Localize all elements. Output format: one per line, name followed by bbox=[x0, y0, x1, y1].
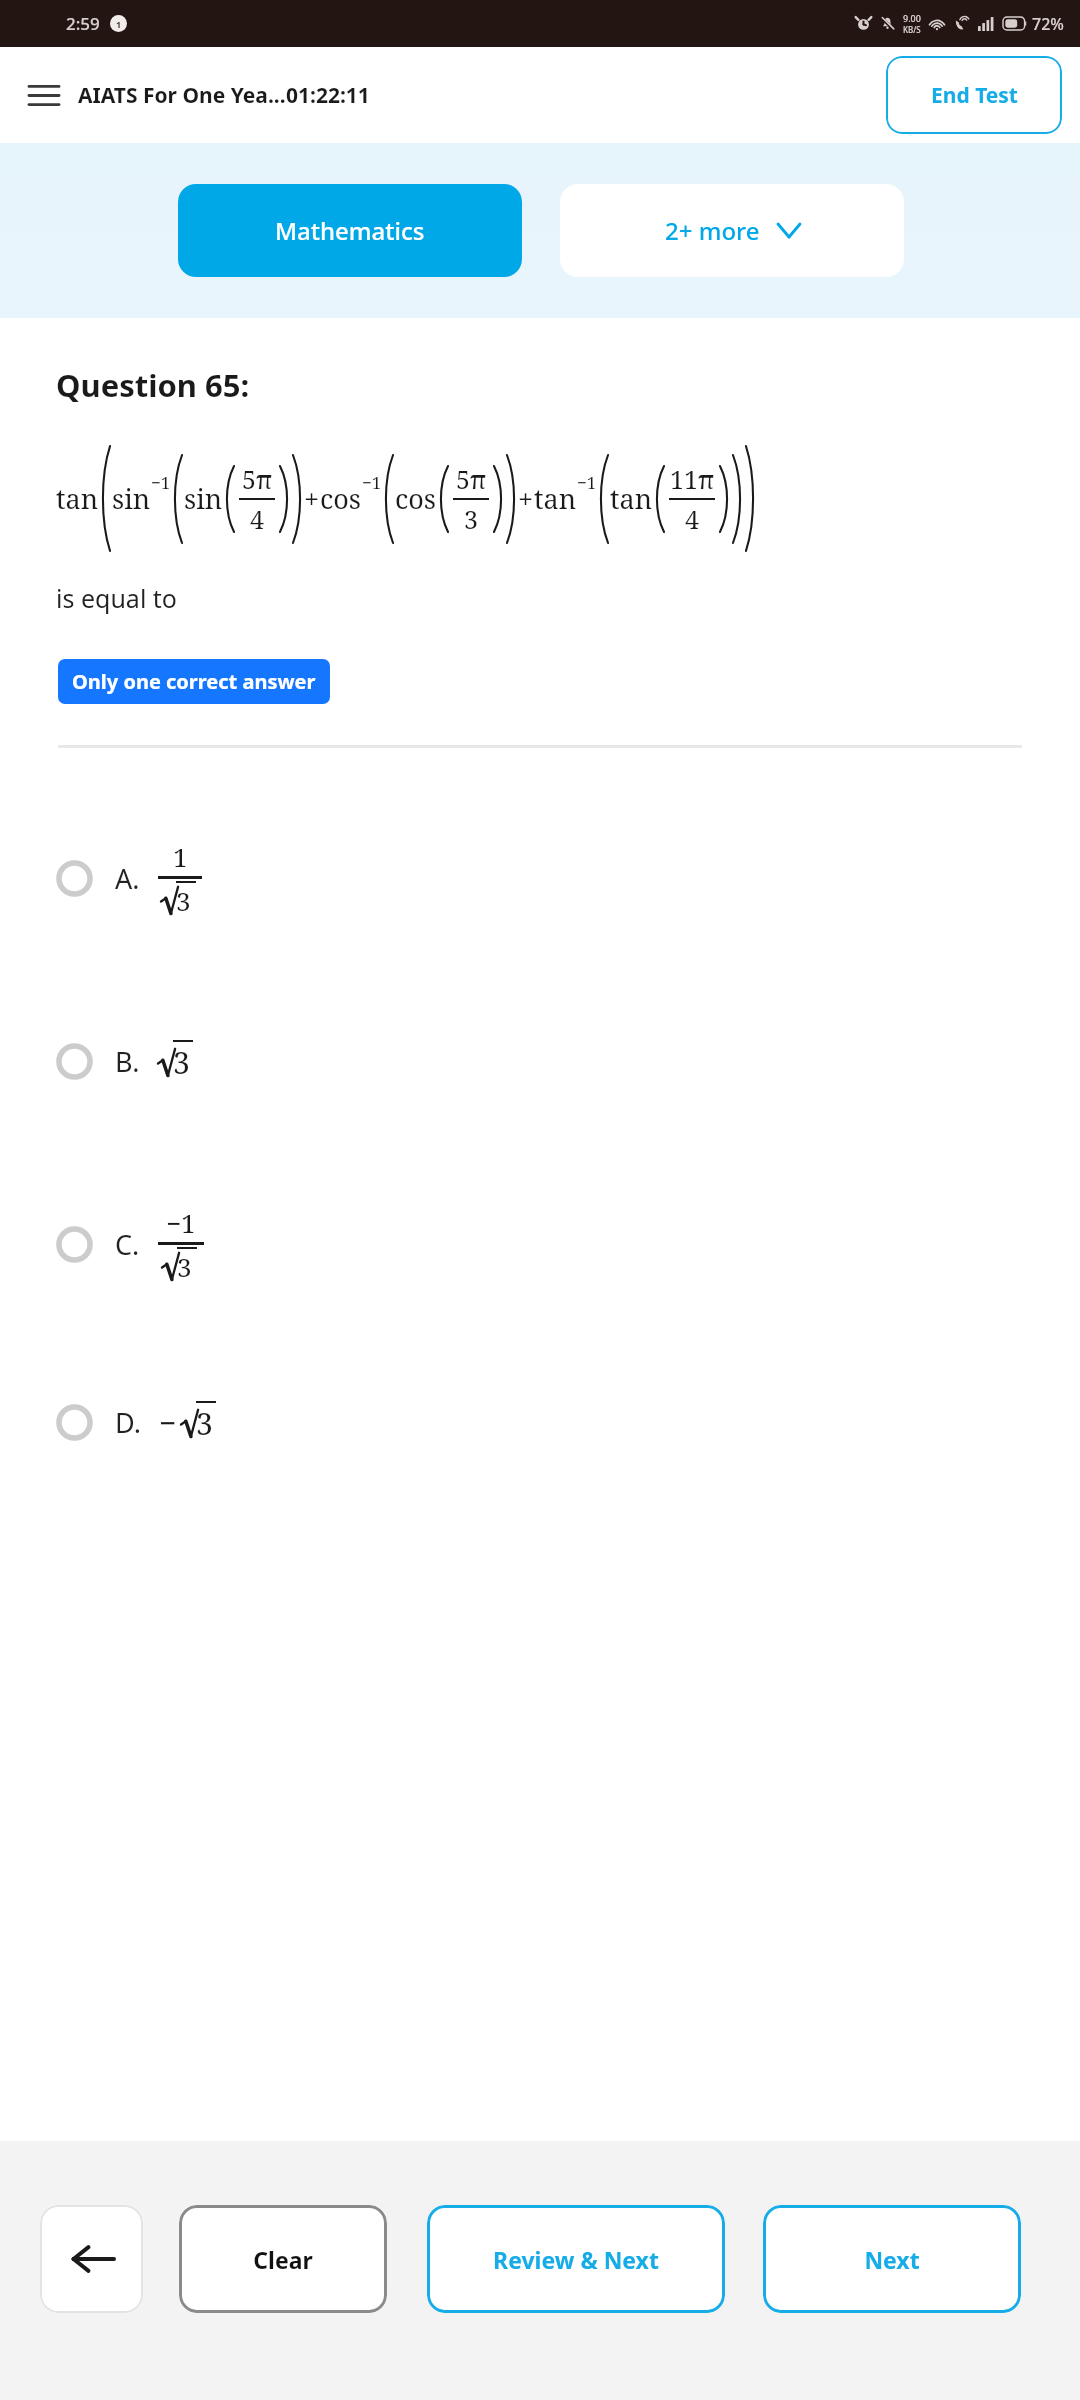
staticText: −1 bbox=[151, 471, 171, 494]
staticText: 3 bbox=[177, 1249, 192, 1284]
staticText: −1 bbox=[166, 1205, 196, 1240]
staticText: cos bbox=[320, 480, 362, 517]
button[interactable]: B. bbox=[0, 1034, 1080, 1089]
staticText: 01:22:11 bbox=[286, 81, 370, 110]
staticText: 4 bbox=[685, 502, 699, 536]
staticText: Next bbox=[864, 2244, 920, 2275]
button[interactable]: End Test bbox=[886, 56, 1062, 134]
staticText: 4 bbox=[250, 502, 264, 536]
staticText: End Test bbox=[931, 81, 1018, 110]
staticText: tan bbox=[56, 480, 99, 517]
staticText: 3 bbox=[196, 1403, 213, 1444]
staticText: tan bbox=[534, 480, 577, 517]
button[interactable]: D. bbox=[0, 1395, 1080, 1450]
staticText: + bbox=[518, 480, 534, 517]
button[interactable]: A. bbox=[0, 833, 1080, 924]
staticText: A. bbox=[115, 860, 140, 897]
staticText: 3 bbox=[464, 502, 478, 536]
staticText: − bbox=[159, 1402, 177, 1443]
staticText: D. bbox=[115, 1404, 141, 1441]
staticText: 1 bbox=[173, 839, 188, 874]
staticText: 2:59 bbox=[66, 12, 100, 35]
staticText: Clear bbox=[253, 2244, 313, 2275]
staticText: C. bbox=[115, 1226, 140, 1263]
staticText: AIATS For One Yea... bbox=[78, 81, 286, 110]
staticText: 1 bbox=[116, 18, 122, 30]
button[interactable]: Mathematics bbox=[178, 184, 522, 277]
staticText: + bbox=[304, 480, 320, 517]
staticText: −1 bbox=[362, 471, 382, 494]
staticText: sin bbox=[112, 480, 151, 517]
staticText: 5π bbox=[456, 462, 487, 496]
staticText: cos bbox=[395, 480, 437, 517]
staticText: Only one correct answer bbox=[72, 668, 316, 695]
staticText: 3 bbox=[173, 1042, 190, 1083]
staticText: KB/S bbox=[903, 24, 921, 35]
staticText: 11π bbox=[670, 462, 715, 496]
staticText: 2+ more bbox=[665, 214, 760, 247]
staticText: 5π bbox=[242, 462, 273, 496]
staticText: Mathematics bbox=[275, 214, 425, 247]
staticText: tan bbox=[610, 480, 653, 517]
staticText: sin bbox=[184, 480, 223, 517]
button[interactable]: Review & Next bbox=[427, 2205, 725, 2313]
button[interactable]: Back bbox=[40, 2205, 143, 2313]
staticText: −1 bbox=[577, 471, 597, 494]
staticText: 9.00 bbox=[903, 12, 921, 24]
staticText: Review & Next bbox=[493, 2244, 659, 2275]
button[interactable]: Next bbox=[763, 2205, 1021, 2313]
staticText: B. bbox=[115, 1043, 140, 1080]
staticText: 3 bbox=[176, 883, 191, 918]
button[interactable]: Menu bbox=[20, 71, 68, 119]
staticText: is equal to bbox=[56, 581, 177, 615]
button[interactable]: C. bbox=[0, 1199, 1080, 1290]
button[interactable]: 2+ more bbox=[560, 184, 904, 277]
staticText: 72% bbox=[1032, 13, 1064, 35]
button[interactable]: Clear bbox=[179, 2205, 387, 2313]
staticText: Question 65: bbox=[56, 364, 250, 406]
